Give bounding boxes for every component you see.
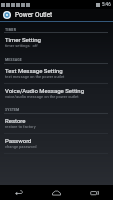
staticText: Restore bbox=[5, 117, 26, 124]
staticText: restore to factory bbox=[5, 124, 36, 129]
button[interactable]: Password bbox=[0, 133, 113, 153]
staticText: Voice/Audio Message Setting bbox=[5, 87, 85, 94]
staticText: Text Message Setting bbox=[5, 67, 63, 74]
button[interactable]: Back bbox=[0, 185, 37, 200]
staticText: timer settings: off bbox=[5, 43, 38, 48]
button[interactable]: Timer Setting bbox=[0, 32, 113, 52]
button[interactable]: Restore bbox=[0, 113, 113, 133]
staticText: Timer Setting bbox=[5, 36, 41, 43]
staticText: MESSAGE bbox=[5, 57, 22, 62]
staticText: change password bbox=[5, 144, 37, 149]
staticText: Password bbox=[5, 137, 32, 144]
staticText: TIMER bbox=[5, 27, 16, 32]
staticText: Power Outlet bbox=[15, 11, 53, 19]
button[interactable]: Home bbox=[37, 185, 75, 200]
staticText: SYSTEM bbox=[5, 107, 20, 112]
staticText: voice/audio message on the power outlet bbox=[5, 94, 79, 99]
button[interactable]: Recent apps bbox=[75, 185, 113, 200]
button[interactable]: Voice/Audio Message Setting bbox=[0, 83, 113, 103]
staticText: 5:46 bbox=[102, 2, 111, 7]
button[interactable]: Text Message Setting bbox=[0, 63, 113, 83]
staticText: text message on the power outlet bbox=[5, 74, 65, 79]
